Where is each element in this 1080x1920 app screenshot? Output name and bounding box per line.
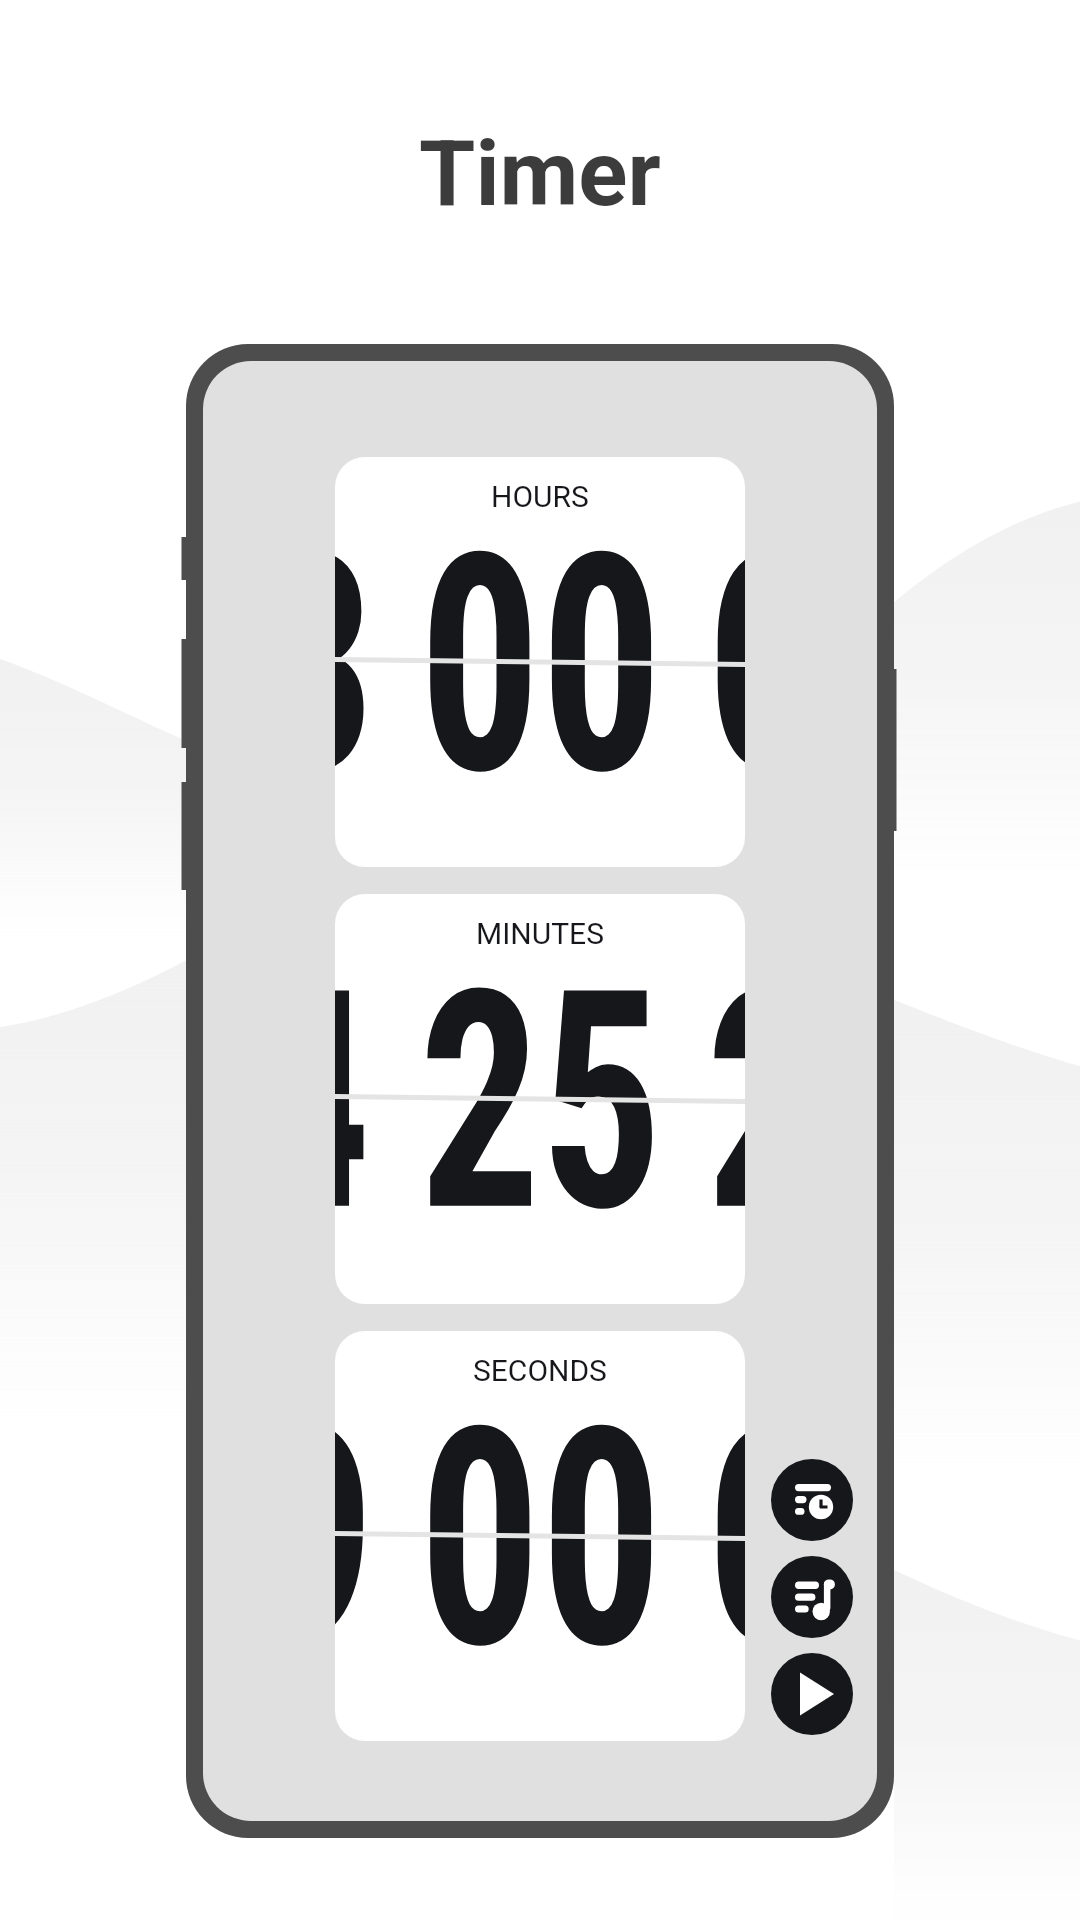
button[interactable]: HOURS	[335, 457, 745, 867]
button[interactable]: Start timer	[771, 1653, 853, 1735]
staticText: MINUTES	[476, 916, 604, 951]
staticText: SECONDS	[473, 1353, 607, 1388]
button[interactable]: Timer sound	[771, 1556, 853, 1638]
staticText: Timer	[419, 121, 661, 228]
button[interactable]: Recent timers	[771, 1459, 853, 1541]
button[interactable]: SECONDS	[335, 1331, 745, 1741]
button[interactable]: MINUTES	[335, 894, 745, 1304]
staticText: HOURS	[491, 479, 589, 514]
